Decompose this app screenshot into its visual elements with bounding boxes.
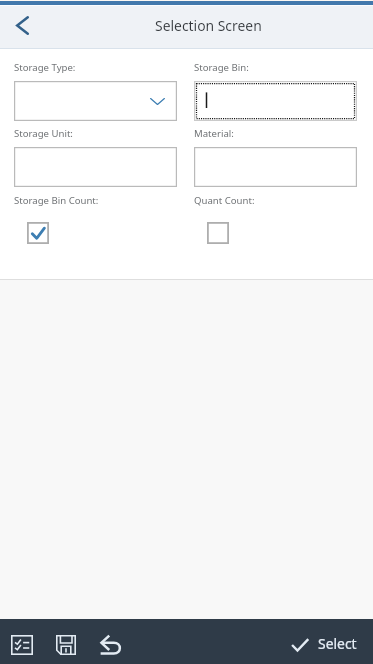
staticText: Material:: [194, 127, 234, 140]
button[interactable]: [194, 81, 357, 121]
button[interactable]: Unchecked: [207, 222, 229, 244]
staticText: Storage Type:: [14, 61, 76, 74]
staticText: Storage Bin:: [194, 61, 249, 74]
button[interactable]: Select: [291, 619, 373, 664]
button[interactable]: Back: [0, 6, 44, 48]
button[interactable]: Save: [44, 619, 88, 664]
button[interactable]: [194, 147, 357, 187]
button[interactable]: Checklist: [0, 619, 44, 664]
staticText: Storage Unit:: [14, 127, 73, 140]
staticText: Select: [318, 634, 357, 653]
button[interactable]: [14, 81, 177, 121]
staticText: Quant Count:: [194, 194, 255, 207]
staticText: Storage Bin Count:: [14, 194, 99, 207]
button[interactable]: [14, 147, 177, 187]
staticText: Selection Screen: [155, 16, 262, 35]
button[interactable]: Undo: [88, 619, 132, 664]
button[interactable]: Checked: [27, 222, 49, 244]
